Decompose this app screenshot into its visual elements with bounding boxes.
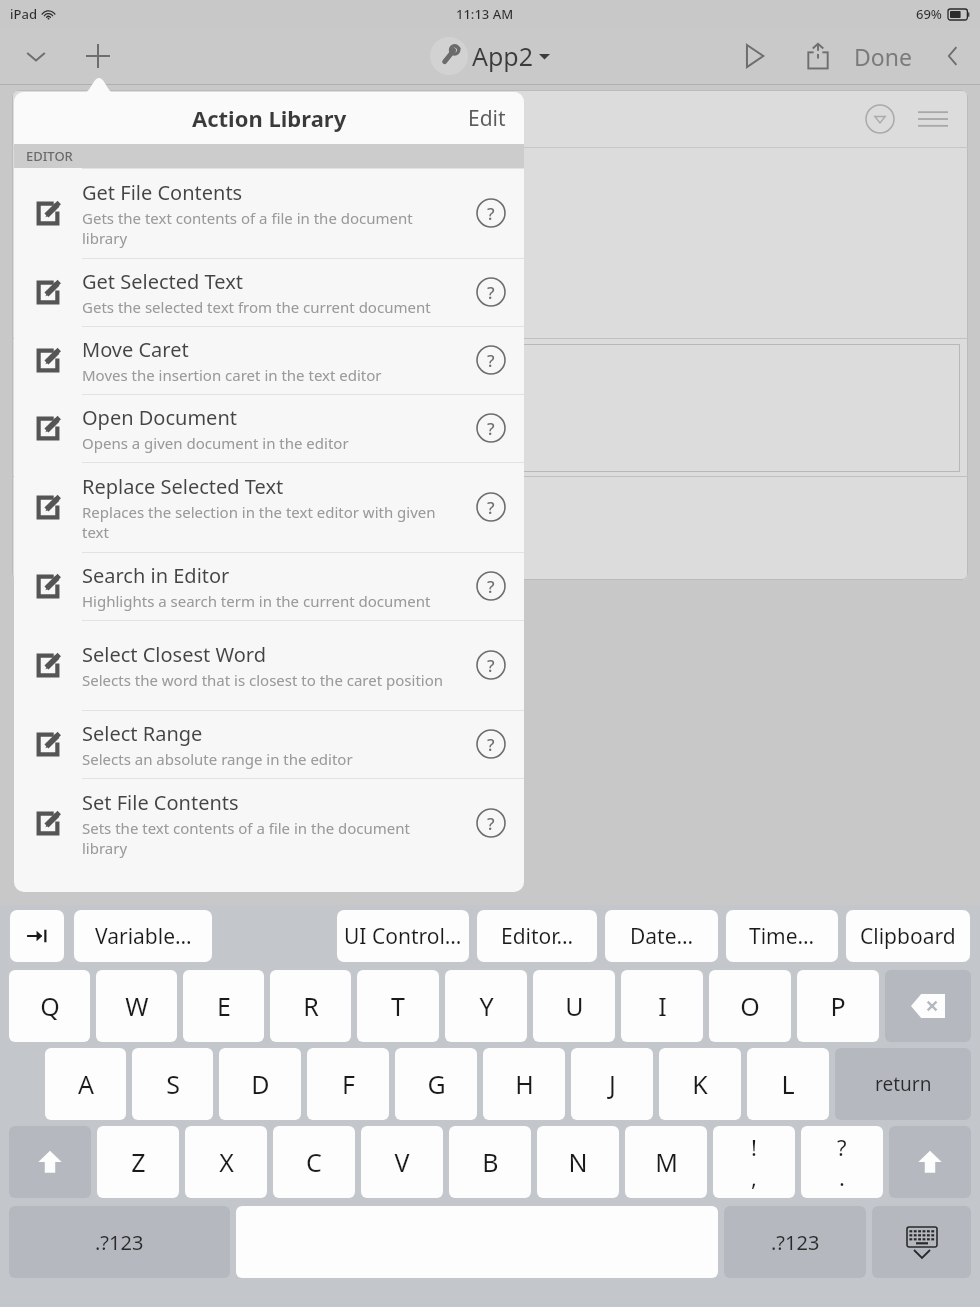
button[interactable]: F [307, 1048, 389, 1120]
button[interactable]: Replace Selected Text [14, 462, 524, 552]
button[interactable]: I [621, 970, 703, 1042]
staticText: 11:13 AM [456, 5, 514, 23]
staticText: .?123 [771, 1229, 820, 1256]
button[interactable]: Help for Select Closest Word [458, 620, 524, 710]
staticText: Search in Editor [82, 562, 230, 589]
staticText: C [306, 1145, 322, 1179]
staticText: ? [487, 812, 495, 835]
button[interactable]: T [357, 970, 439, 1042]
button[interactable]: Set File Contents [14, 778, 524, 868]
button[interactable]: Help for Move Caret [458, 326, 524, 394]
staticText: ? [487, 733, 495, 756]
button[interactable]: Help for Set File Contents [458, 778, 524, 868]
button[interactable]: Share [792, 28, 844, 84]
button[interactable]: Shift [889, 1126, 971, 1198]
staticText: return [875, 1071, 932, 1097]
button[interactable]: X [185, 1126, 267, 1198]
button[interactable]: H [483, 1048, 565, 1120]
button[interactable]: Edit [450, 92, 524, 144]
button[interactable]: App2 [430, 28, 550, 84]
button[interactable]: Move Caret [14, 326, 524, 394]
staticText: ? [487, 281, 495, 304]
button[interactable]: Open Document [14, 394, 524, 462]
staticText: Time… [749, 922, 815, 951]
staticText: Replace Selected Text [82, 473, 284, 500]
button[interactable]: A [45, 1048, 126, 1120]
staticText: Y [479, 989, 494, 1023]
button[interactable]: S [132, 1048, 213, 1120]
staticText: Gets the text contents of a file in the … [82, 208, 448, 248]
staticText: Get File Contents [82, 179, 243, 206]
button[interactable]: Hide keyboard [872, 1206, 971, 1278]
button[interactable]: Editor… [477, 910, 597, 962]
button[interactable]: Select Range [14, 710, 524, 778]
staticText: ! [751, 1132, 757, 1162]
button[interactable]: Add action [74, 28, 122, 84]
button[interactable]: Help for Select Range [458, 710, 524, 778]
button[interactable]: Y [445, 970, 527, 1042]
button[interactable]: W [96, 970, 177, 1042]
staticText: Open Document [82, 404, 237, 431]
button[interactable]: UI Control… [337, 910, 469, 962]
button[interactable]: L [747, 1048, 829, 1120]
button[interactable]: G [395, 1048, 477, 1120]
button[interactable]: Run [728, 28, 780, 84]
button[interactable]: V [361, 1126, 443, 1198]
button[interactable]: Help for Open Document [458, 394, 524, 462]
button[interactable]: Time… [726, 910, 838, 962]
staticText: ? [487, 417, 495, 440]
button[interactable]: M [625, 1126, 707, 1198]
staticText: 69% [916, 5, 942, 23]
staticText: .?123 [95, 1229, 144, 1256]
button[interactable]: Get Selected Text [14, 258, 524, 326]
button[interactable]: .?123 [9, 1206, 230, 1278]
button[interactable]: U [533, 970, 615, 1042]
button[interactable]: Select Closest Word [14, 620, 524, 710]
button[interactable] [10, 910, 64, 962]
button[interactable]: P [797, 970, 879, 1042]
button[interactable]: Date… [605, 910, 718, 962]
button[interactable]: ! [713, 1126, 795, 1198]
button[interactable]: .?123 [724, 1206, 866, 1278]
staticText: ? [487, 349, 495, 372]
button[interactable]: K [659, 1048, 741, 1120]
button[interactable]: return [835, 1048, 971, 1120]
staticText: S [166, 1067, 180, 1101]
button[interactable]: Help for Replace Selected Text [458, 462, 524, 552]
button[interactable]: C [273, 1126, 355, 1198]
button[interactable]: ? [801, 1126, 883, 1198]
button[interactable]: Search in Editor [14, 552, 524, 620]
button[interactable]: R [270, 970, 351, 1042]
button[interactable]: Shift [9, 1126, 91, 1198]
staticText: B [482, 1145, 499, 1179]
button[interactable]: Help for Get Selected Text [458, 258, 524, 326]
button[interactable]: Reorder [916, 102, 950, 136]
button[interactable]: Clipboard [846, 910, 970, 962]
button[interactable]: Collapse block [864, 103, 896, 135]
button[interactable]: Backspace [885, 970, 971, 1042]
staticText: Sets the text contents of a file in the … [82, 818, 448, 858]
staticText: D [251, 1067, 270, 1101]
button[interactable]: Variable… [74, 910, 212, 962]
staticText: Select Range [82, 720, 203, 747]
button[interactable]: Help for Search in Editor [458, 552, 524, 620]
staticText: Opens a given document in the editor [82, 433, 349, 453]
button[interactable]: Collapse [12, 28, 60, 84]
button[interactable]: Help for Get File Contents [458, 168, 524, 258]
button[interactable]: Q [9, 970, 90, 1042]
staticText: UI Control… [344, 922, 462, 951]
staticText: ? [487, 202, 495, 225]
staticText: Action Library [192, 103, 347, 133]
button[interactable]: N [537, 1126, 619, 1198]
button[interactable]: E [183, 970, 264, 1042]
button[interactable]: O [709, 970, 791, 1042]
button[interactable]: Back [930, 28, 974, 84]
button[interactable]: Z [97, 1126, 179, 1198]
button[interactable]: Done [846, 28, 920, 84]
button[interactable]: D [219, 1048, 301, 1120]
button[interactable]: Get File Contents [14, 168, 524, 258]
button[interactable]: J [571, 1048, 653, 1120]
button[interactable]: B [449, 1126, 531, 1198]
staticText: Clipboard [860, 922, 956, 951]
